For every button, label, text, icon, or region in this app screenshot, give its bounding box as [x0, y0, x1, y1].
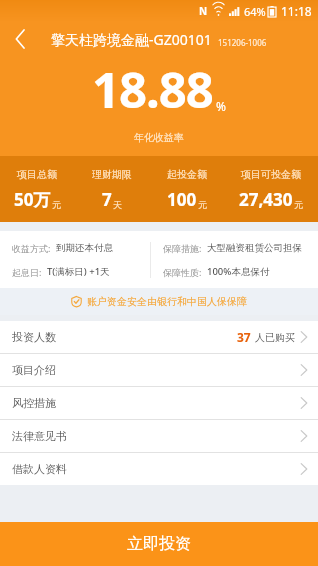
staticText: 18.88: [92, 56, 213, 123]
staticText: 7: [102, 188, 112, 211]
button[interactable]: 法律意见书: [0, 420, 318, 452]
staticText: 人已购买: [255, 331, 295, 344]
staticText: 151206-1006: [218, 37, 267, 48]
button[interactable]: 借款人资料: [0, 453, 318, 485]
staticText: 起息日:: [12, 266, 42, 278]
staticText: 100%本息保付: [207, 265, 270, 278]
staticText: 收益方式:: [12, 242, 51, 254]
staticText: 64%: [244, 4, 266, 19]
staticText: 风控措施: [12, 396, 56, 410]
staticText: 保障性质:: [163, 266, 202, 278]
button[interactable]: 投资人数: [0, 321, 318, 353]
staticText: 理财期限: [92, 168, 132, 181]
staticText: 元: [52, 199, 61, 210]
staticText: 擎天柱跨境金融-GZ00101: [51, 30, 212, 49]
staticText: 27,430: [239, 188, 293, 211]
staticText: 37: [237, 329, 251, 345]
staticText: 法律意见书: [12, 429, 67, 443]
staticText: 到期还本付息: [56, 242, 113, 254]
staticText: 保障措施:: [163, 242, 202, 254]
staticText: 借款人资料: [12, 462, 67, 476]
staticText: 天: [113, 199, 122, 210]
button[interactable]: 立即投资: [0, 522, 318, 566]
staticText: 账户资金安全由银行和中国人保保障: [87, 295, 247, 308]
staticText: 项目总额: [17, 168, 57, 181]
staticText: 年化收益率: [134, 131, 184, 144]
staticText: T(满标日) +1天: [47, 265, 110, 278]
staticText: 11:18: [281, 3, 312, 19]
button[interactable]: Back: [0, 22, 40, 56]
staticText: 元: [198, 199, 207, 210]
button[interactable]: 项目介绍: [0, 354, 318, 386]
staticText: 元: [294, 199, 303, 210]
staticText: 投资人数: [12, 330, 56, 344]
staticText: 大型融资租赁公司担保: [207, 242, 302, 254]
staticText: 项目介绍: [12, 363, 56, 377]
staticText: 立即投资: [127, 534, 191, 554]
staticText: 起投金额: [167, 168, 207, 181]
staticText: 项目可投金额: [241, 168, 301, 181]
staticText: 100: [167, 188, 197, 211]
staticText: N: [199, 4, 208, 18]
button[interactable]: 风控措施: [0, 387, 318, 419]
staticText: 50万: [14, 188, 51, 211]
staticText: %: [216, 98, 226, 114]
